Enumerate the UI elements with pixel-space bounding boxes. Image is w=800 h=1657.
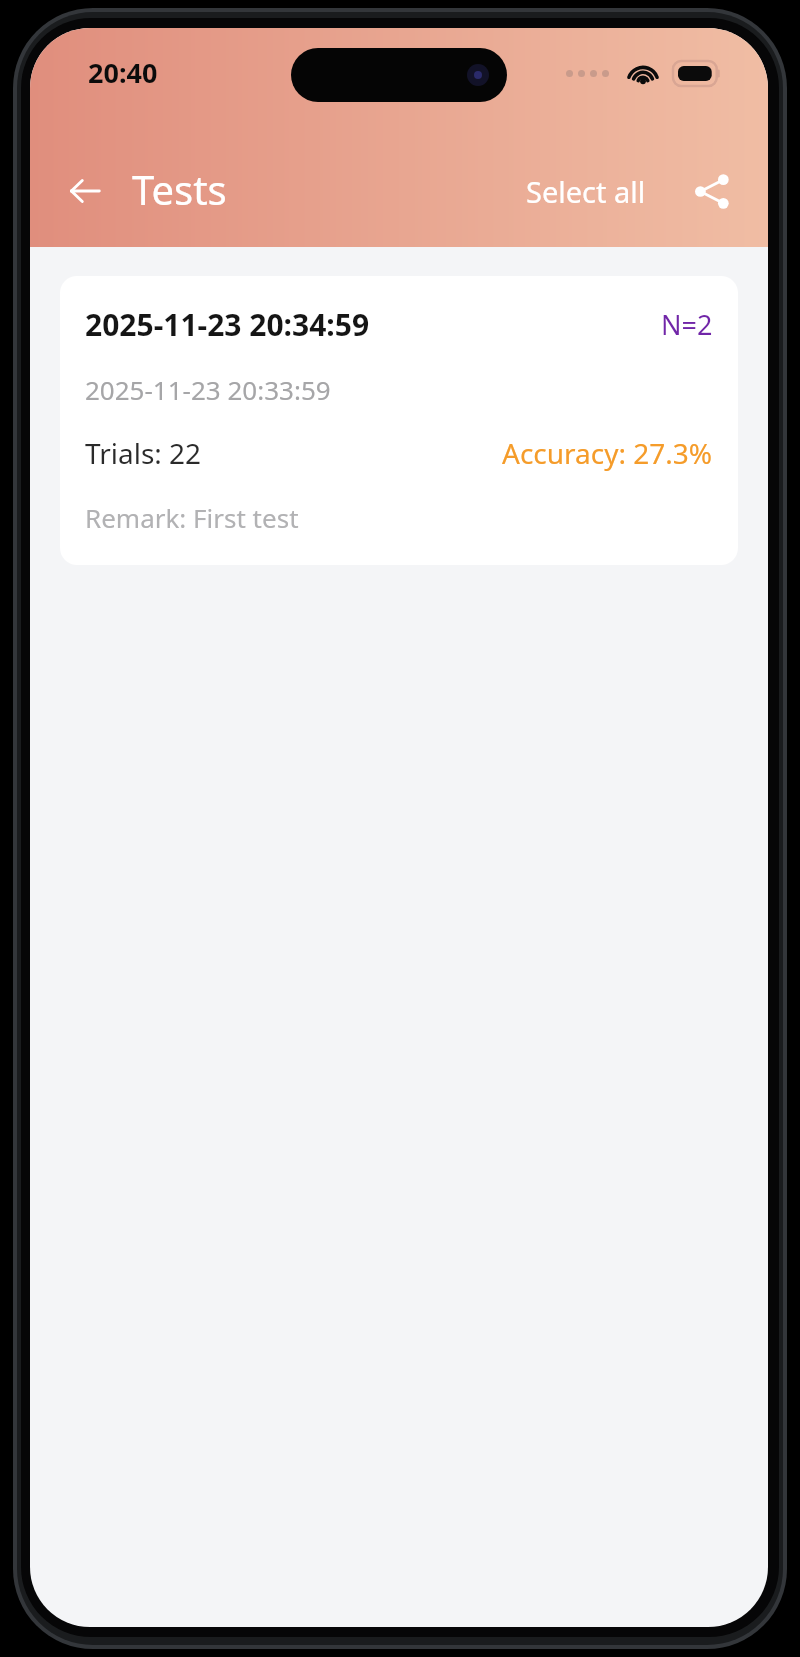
staticText: Select all — [526, 172, 646, 211]
button[interactable]: Share — [680, 160, 742, 222]
staticText: Tests — [132, 162, 227, 216]
button[interactable]: 2025-11-23 20:34:59 — [60, 276, 738, 565]
staticText: Remark: First test — [85, 500, 299, 535]
staticText: 2025-11-23 20:33:59 — [85, 372, 331, 407]
button[interactable]: Back — [52, 158, 118, 224]
staticText: Trials: 22 — [85, 434, 202, 472]
staticText: 20:40 — [88, 54, 158, 91]
staticText: 2025-11-23 20:34:59 — [85, 304, 370, 345]
button[interactable]: Select all — [518, 164, 654, 219]
staticText: Accuracy: 27.3% — [502, 434, 713, 472]
staticText: N=2 — [661, 306, 713, 343]
